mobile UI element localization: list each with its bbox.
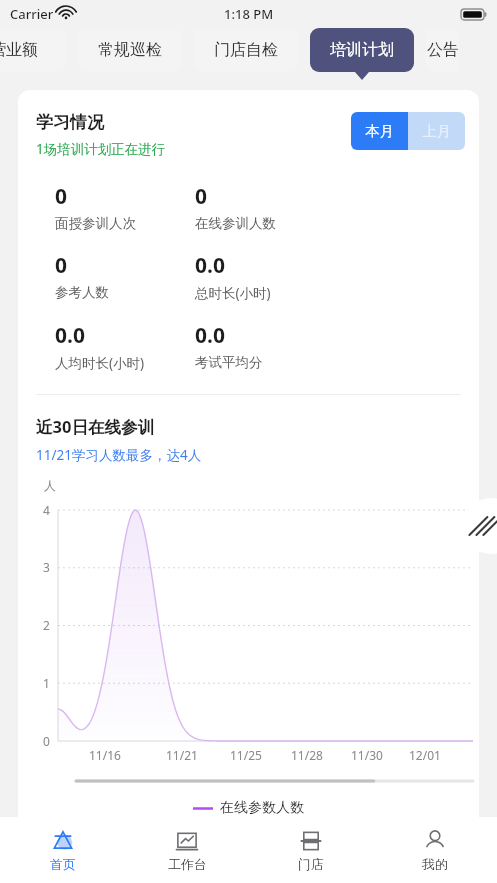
button[interactable]: 常规巡检 xyxy=(78,28,182,72)
staticText: 面授参训人次 xyxy=(55,215,136,232)
staticText: 考试平均分 xyxy=(195,354,263,371)
staticText: 0 xyxy=(55,182,68,211)
staticText: 常规巡检 xyxy=(98,40,162,60)
staticText: 2 xyxy=(43,617,50,633)
staticText: 11/30 xyxy=(351,747,383,763)
staticText: 1场培训计划正在进行 xyxy=(36,140,166,158)
staticText: 0.0 xyxy=(55,321,85,350)
button[interactable]: 营业额 xyxy=(0,28,66,72)
staticText: 公告 xyxy=(427,40,459,60)
staticText: 培训计划 xyxy=(330,40,394,60)
staticText: 首页 xyxy=(50,856,76,872)
button[interactable]: 首页 xyxy=(0,817,125,883)
staticText: 门店 xyxy=(298,856,324,872)
button[interactable]: 公告 xyxy=(426,28,459,72)
staticText: 人均时长(小时) xyxy=(55,354,145,372)
staticText: 11/21学习人数最多，达4人 xyxy=(36,446,202,464)
staticText: 参考人数 xyxy=(55,284,109,301)
staticText: 4 xyxy=(43,502,50,518)
staticText: 1 xyxy=(43,675,50,691)
staticText: 0.0 xyxy=(195,251,225,280)
button[interactable]: 门店自检 xyxy=(194,28,298,72)
button[interactable]: 本月 xyxy=(351,112,408,150)
staticText: 上月 xyxy=(422,122,451,140)
staticText: 近30日在线参训 xyxy=(36,415,154,438)
staticText: 12/01 xyxy=(409,747,441,763)
staticText: 人 xyxy=(44,478,56,493)
staticText: 11/25 xyxy=(230,747,262,763)
staticText: 营业额 xyxy=(0,40,38,60)
staticText: 门店自检 xyxy=(214,40,278,60)
staticText: 总时长(小时) xyxy=(195,284,271,302)
staticText: 11/16 xyxy=(89,747,121,763)
staticText: 我的 xyxy=(422,856,448,872)
button[interactable]: 门店 xyxy=(249,817,373,883)
staticText: 0 xyxy=(55,251,68,280)
staticText: 学习情况 xyxy=(36,112,104,133)
staticText: 0 xyxy=(195,182,208,211)
staticText: 11/28 xyxy=(291,747,323,763)
button[interactable]: 培训计划 xyxy=(310,28,414,72)
button[interactable]: 我的 xyxy=(373,817,497,883)
staticText: 工作台 xyxy=(168,856,207,872)
staticText: Carrier xyxy=(10,5,54,23)
staticText: 11/21 xyxy=(166,747,198,763)
button[interactable]: 上月 xyxy=(408,112,465,150)
staticText: 在线参数人数 xyxy=(220,799,304,817)
staticText: 0 xyxy=(43,733,50,749)
staticText: 在线参训人数 xyxy=(195,215,276,232)
button[interactable]: 工作台 xyxy=(125,817,249,883)
staticText: 1:18 PM xyxy=(224,5,274,23)
staticText: 3 xyxy=(43,559,50,575)
staticText: 0.0 xyxy=(195,321,225,350)
button[interactable]: Quick action xyxy=(463,498,497,554)
staticText: 本月 xyxy=(365,122,394,140)
